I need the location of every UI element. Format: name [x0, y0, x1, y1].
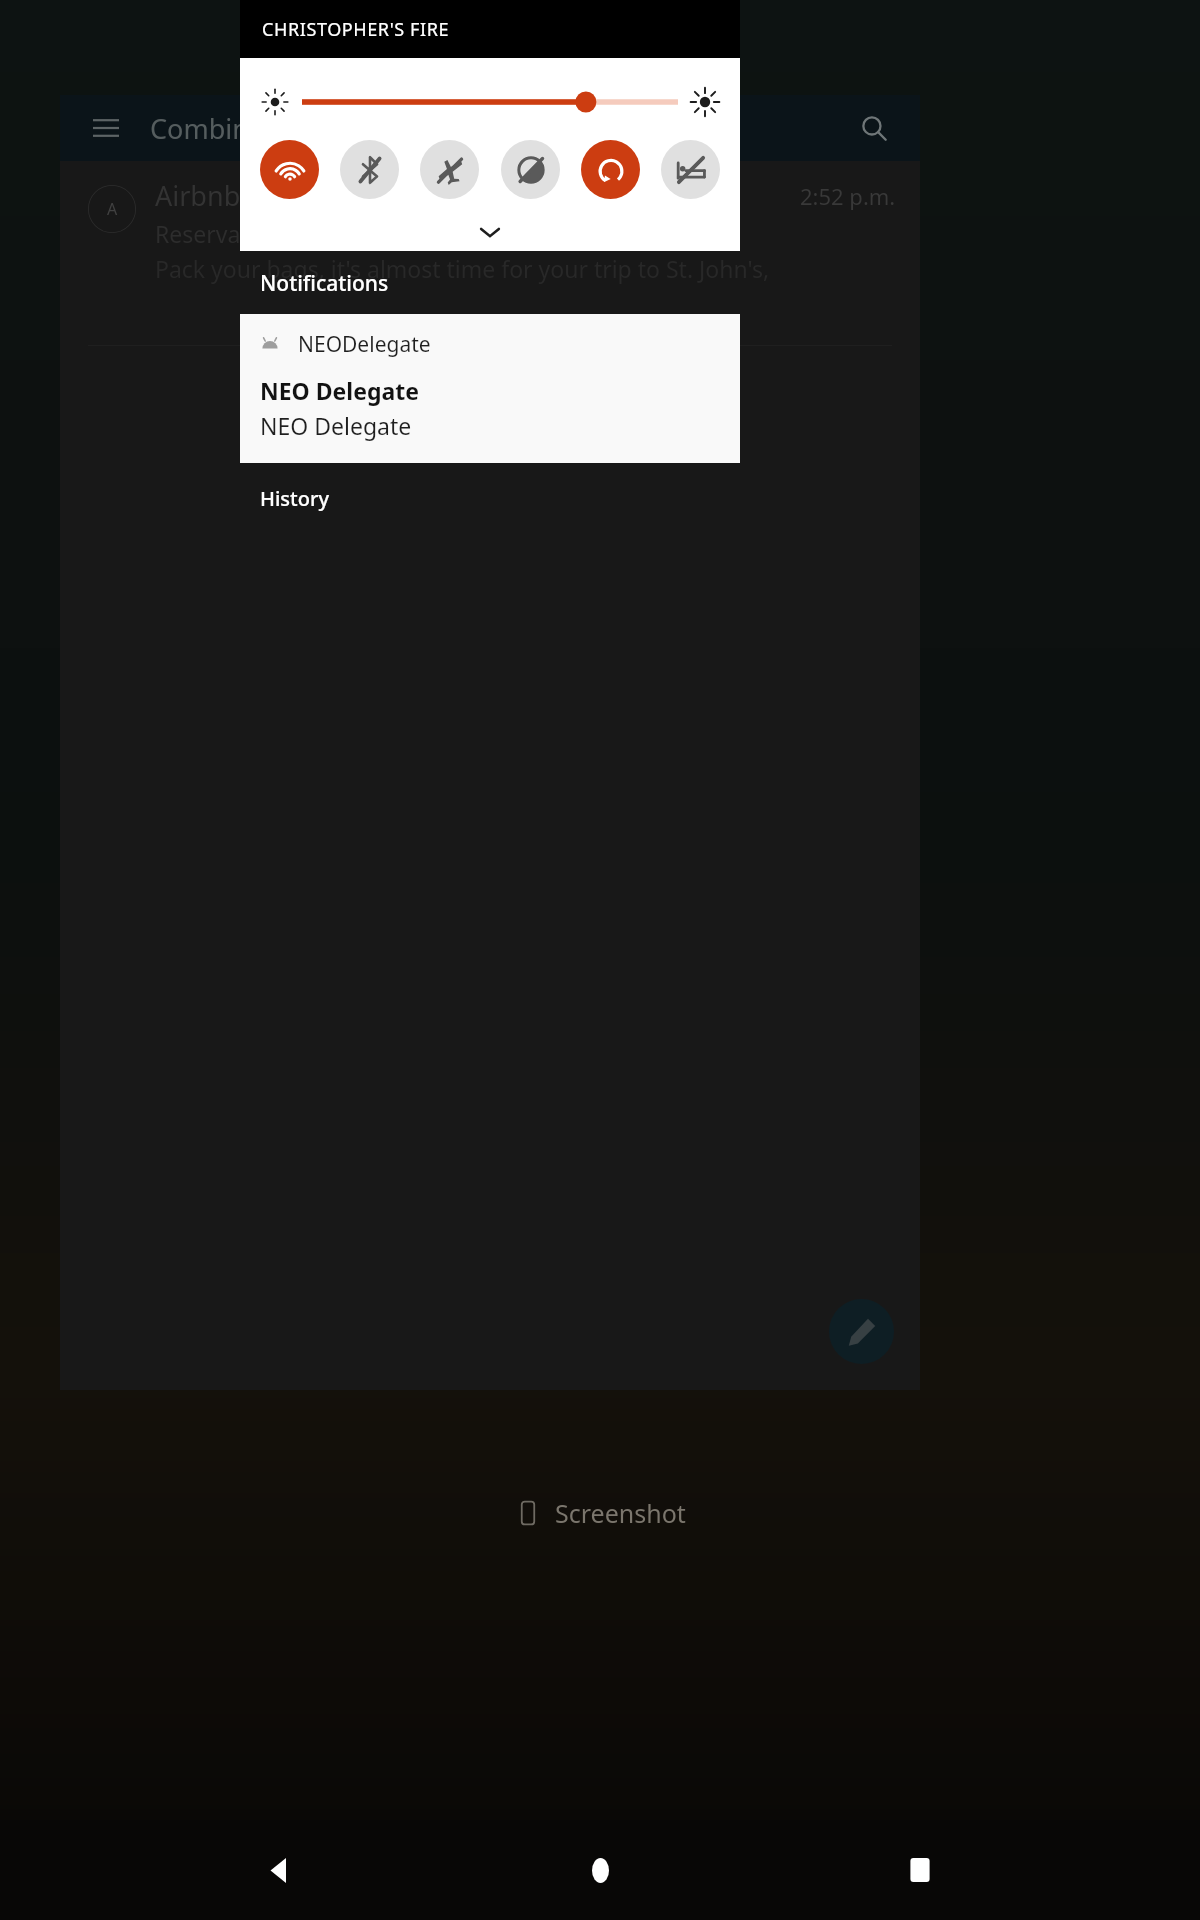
staticText: 2:52 p.m. [800, 181, 896, 211]
button[interactable]: Compose [829, 1299, 894, 1364]
button[interactable]: Search [850, 104, 898, 152]
button[interactable]: Bedtime off [661, 140, 720, 199]
staticText: Notifications [260, 269, 389, 298]
staticText: Airbnb [155, 177, 241, 214]
button[interactable]: Bluetooth off [340, 140, 399, 199]
button[interactable]: Back [240, 1830, 320, 1910]
staticText: History [260, 485, 329, 512]
button[interactable]: History [260, 485, 329, 512]
staticText: A [107, 198, 118, 220]
staticText: Combined [150, 110, 281, 147]
staticText: Screenshot [555, 1496, 686, 1530]
staticText: Pack your bags, it's almost time for you… [155, 253, 790, 284]
button[interactable]: NEODelegate [240, 314, 740, 463]
button[interactable]: Open navigation menu [82, 104, 130, 152]
button[interactable]: Airplane mode off [420, 140, 479, 199]
button[interactable]: Home [560, 1830, 640, 1910]
staticText: CHRISTOPHER'S FIRE [262, 17, 450, 42]
button[interactable]: Expand quick settings [240, 213, 740, 251]
staticText: NEO Delegate [260, 410, 412, 441]
staticText: Reservation reminder - June 15, 2024 [155, 218, 554, 249]
button[interactable]: Recent apps [880, 1830, 960, 1910]
button[interactable]: Do not disturb off [501, 140, 560, 199]
staticText: NEODelegate [298, 330, 431, 359]
button[interactable]: Wi-Fi [260, 140, 319, 199]
button[interactable] [302, 87, 678, 117]
staticText: NEO Delegate [260, 375, 419, 406]
button[interactable]: A [60, 161, 920, 346]
button[interactable]: Auto-rotate [581, 140, 640, 199]
